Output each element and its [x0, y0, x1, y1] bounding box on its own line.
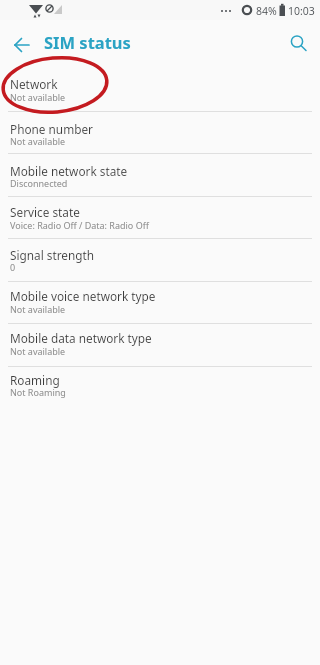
button[interactable]: Mobile voice network type — [0, 281, 320, 324]
staticText: Not Roaming — [10, 386, 66, 398]
staticText: Mobile data network type — [10, 330, 152, 346]
button[interactable]: Mobile data network type — [0, 324, 320, 367]
staticText: 84% — [256, 4, 277, 18]
staticText: Voice: Radio Off / Data: Radio Off — [10, 219, 149, 231]
staticText: Roaming — [10, 372, 60, 388]
staticText: SIM status — [44, 31, 131, 53]
staticText: Mobile voice network type — [10, 288, 156, 304]
staticText: Disconnected — [10, 177, 68, 189]
button[interactable]: Mobile network state — [0, 154, 320, 197]
staticText: Signal strength — [10, 247, 95, 263]
staticText: Not available — [10, 303, 66, 315]
staticText: 0 — [10, 261, 16, 273]
button[interactable] — [286, 30, 312, 56]
staticText: Not available — [10, 135, 66, 147]
button[interactable]: Signal strength — [0, 239, 320, 282]
staticText: 10:03 — [288, 4, 315, 18]
staticText: Not available — [10, 345, 66, 357]
staticText: Network — [10, 76, 58, 92]
button[interactable]: Roaming — [0, 366, 320, 409]
button[interactable]: Network — [0, 69, 320, 112]
button[interactable]: Service state — [0, 196, 320, 239]
staticText: Mobile network state — [10, 163, 128, 179]
staticText: Not available — [10, 91, 66, 103]
button[interactable] — [6, 36, 38, 54]
button[interactable]: Phone number — [0, 111, 320, 154]
staticText: Service state — [10, 204, 80, 220]
staticText: Phone number — [10, 121, 93, 137]
